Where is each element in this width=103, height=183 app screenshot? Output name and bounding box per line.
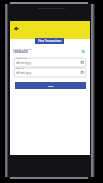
button[interactable]: Date From [14,58,86,67]
button[interactable]: Search [15,82,86,89]
staticText: Search [48,85,54,87]
staticText: dd/mm/yyyy [16,61,32,65]
button[interactable]: View Transactions [35,38,64,44]
staticText: Account Number [13,47,33,50]
staticText: Date To [16,67,24,70]
staticText: View Transactions [38,39,62,43]
staticText: 100004478 [13,50,28,54]
button[interactable]: Account status [80,48,87,55]
button[interactable]: Date To [14,68,86,77]
staticText: Date From [16,57,27,60]
button[interactable]: Back [12,25,21,34]
staticText: dd/mm/yyyy [16,71,32,75]
